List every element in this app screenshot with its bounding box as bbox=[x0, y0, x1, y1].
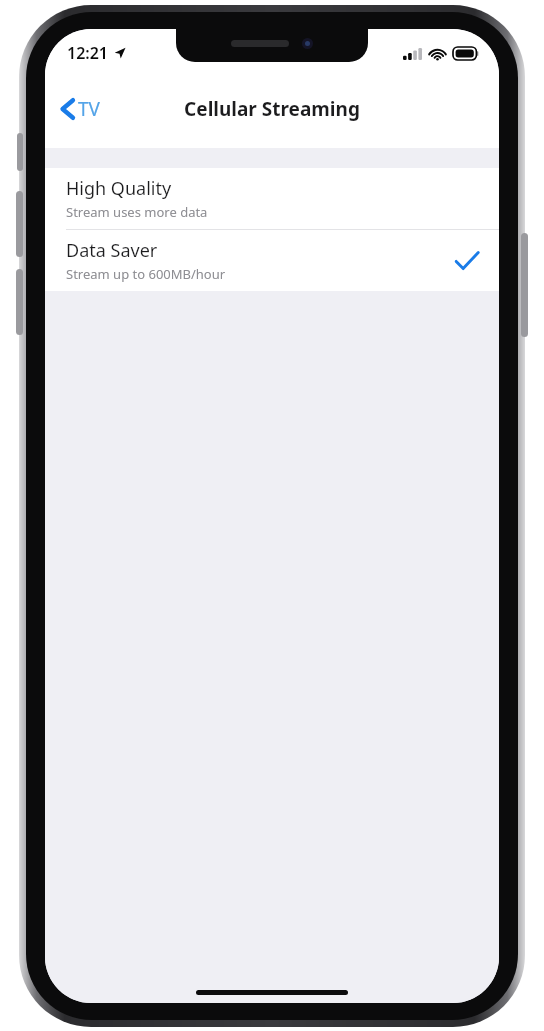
button[interactable]: Data Saver bbox=[45, 230, 499, 291]
staticText: TV bbox=[78, 96, 100, 122]
staticText: High Quality bbox=[66, 176, 172, 201]
staticText: Stream up to 600MB/hour bbox=[66, 265, 226, 283]
staticText: Cellular Streaming bbox=[184, 96, 360, 122]
other: Selected bbox=[455, 251, 479, 271]
staticText: Data Saver bbox=[66, 238, 158, 263]
staticText: Stream uses more data bbox=[66, 203, 208, 221]
button[interactable]: TV bbox=[45, 88, 112, 130]
button[interactable]: High Quality bbox=[45, 168, 499, 229]
staticText: 12:21 bbox=[67, 42, 109, 64]
